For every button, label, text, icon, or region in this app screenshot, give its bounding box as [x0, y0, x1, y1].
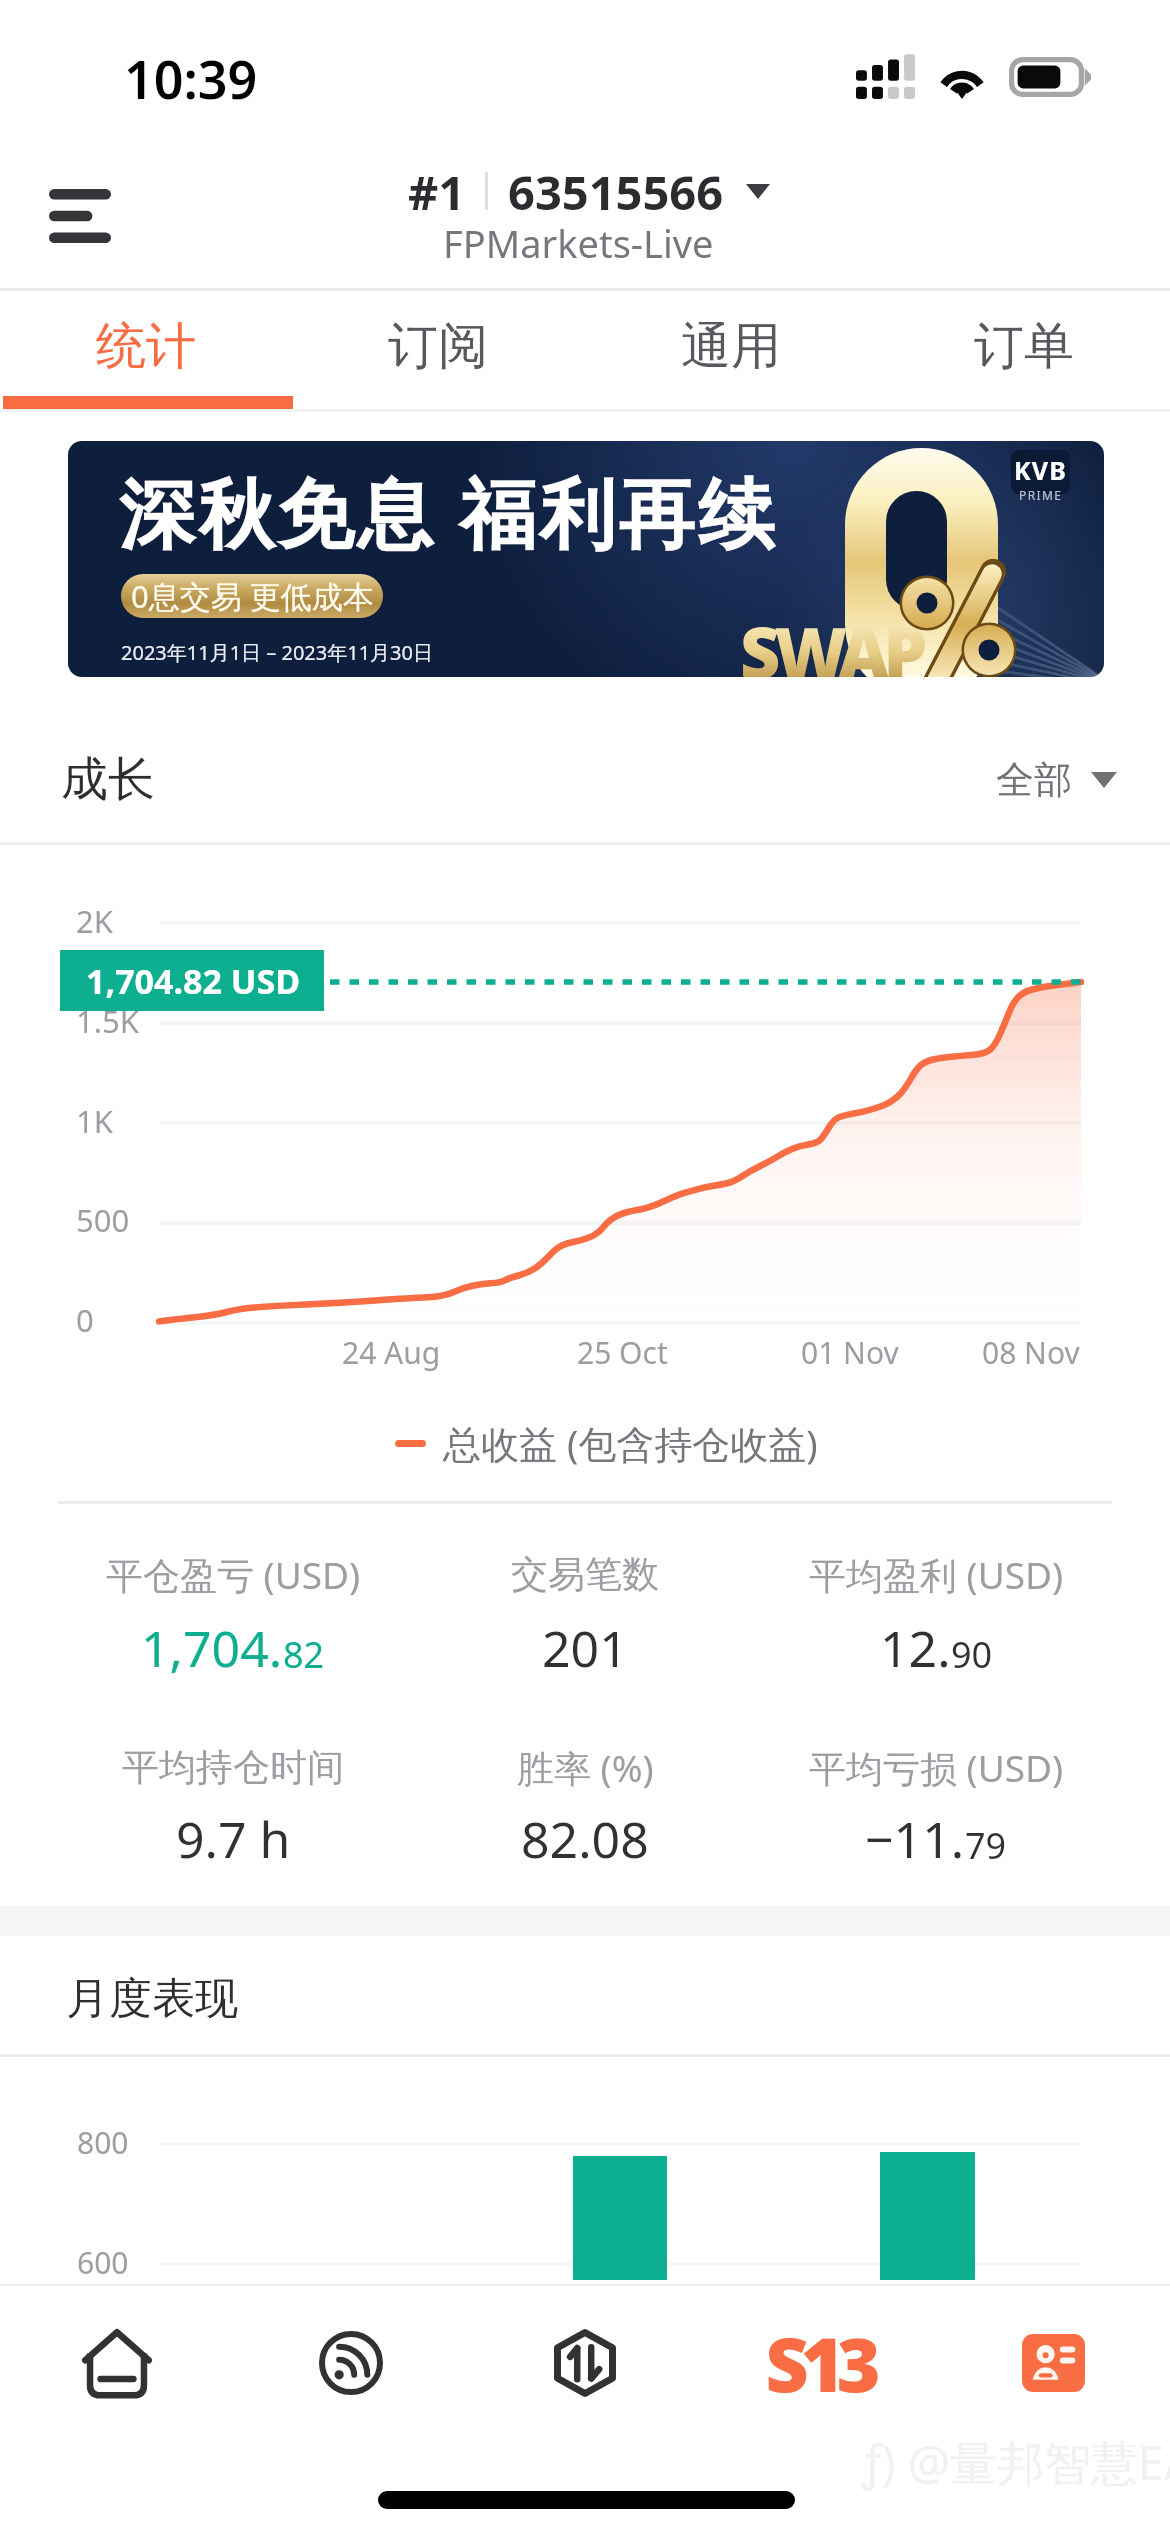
- button[interactable]: S13 Dashboard: [702, 2286, 936, 2440]
- button[interactable]: Menu: [25, 161, 135, 271]
- staticText: 总收益 (包含持仓收益): [443, 1417, 818, 1469]
- staticText: 800: [77, 2122, 129, 2163]
- staticText: 82.08: [521, 1805, 649, 1873]
- staticText: 交易笔数: [511, 1551, 659, 1598]
- staticText: 90: [951, 1630, 993, 1679]
- staticText: PRIME: [1019, 487, 1063, 503]
- staticText: 全部: [996, 756, 1072, 804]
- staticText: 2023年11月1日 – 2023年11月30日: [121, 639, 433, 666]
- staticText: 0息交易 更低成本: [131, 575, 374, 617]
- button[interactable]: Signals: [234, 2286, 468, 2440]
- staticText: 08 Nov: [982, 1332, 1080, 1373]
- button[interactable]: 全部: [996, 752, 1117, 808]
- button[interactable]: Home: [0, 2286, 234, 2440]
- staticText: −11.: [865, 1805, 965, 1873]
- staticText: 平均盈利 (USD): [809, 1549, 1064, 1600]
- staticText: 统计: [96, 315, 196, 378]
- button[interactable]: 订阅: [292, 291, 584, 397]
- staticText: 2K: [76, 900, 113, 942]
- staticText: 通用: [681, 315, 781, 378]
- button[interactable]: 统计: [0, 291, 292, 397]
- staticText: 500: [76, 1199, 130, 1241]
- staticText: SWAP: [740, 604, 922, 677]
- staticText: ƒ) @量邦智慧EA: [862, 2430, 1170, 2494]
- button[interactable]: Trade: [468, 2286, 702, 2440]
- staticText: S13: [765, 2312, 873, 2414]
- staticText: 胜率 (%): [517, 1742, 654, 1793]
- staticText: 订单: [974, 315, 1074, 378]
- button[interactable]: Promotion banner: [68, 441, 1104, 677]
- staticText: 24 Aug: [342, 1332, 441, 1373]
- staticText: 82: [283, 1630, 325, 1679]
- staticText: FPMarkets-Live: [443, 217, 714, 269]
- staticText: 1.5K: [76, 1000, 139, 1042]
- staticText: #1: [408, 160, 466, 222]
- staticText: 1,704.: [141, 1614, 283, 1682]
- button[interactable]: 订单: [877, 291, 1170, 397]
- staticText: 1,704.82 USD: [86, 958, 301, 1004]
- staticText: 01 Nov: [801, 1332, 899, 1373]
- staticText: 25 Oct: [577, 1332, 668, 1373]
- staticText: 0: [76, 1299, 94, 1341]
- staticText: 订阅: [388, 315, 488, 378]
- button[interactable]: Profile: [936, 2286, 1170, 2440]
- staticText: 平均亏损 (USD): [809, 1742, 1064, 1793]
- staticText: 63515566: [508, 160, 724, 222]
- staticText: 12.: [880, 1614, 951, 1682]
- staticText: 1K: [76, 1100, 113, 1142]
- staticText: 平仓盈亏 (USD): [106, 1549, 361, 1600]
- button[interactable]: 通用: [584, 291, 877, 397]
- staticText: 成长: [61, 750, 155, 809]
- staticText: 深秋免息 福利再续: [119, 460, 778, 564]
- staticText: 平均持仓时间: [122, 1744, 344, 1791]
- staticText: 79: [965, 1821, 1007, 1870]
- staticText: 月度表现: [66, 1972, 238, 2026]
- staticText: 201: [542, 1614, 628, 1682]
- staticText: 10:39: [124, 43, 258, 114]
- staticText: 600: [77, 2242, 129, 2283]
- staticText: KVB: [1014, 453, 1068, 487]
- staticText: 9.7 h: [176, 1805, 291, 1873]
